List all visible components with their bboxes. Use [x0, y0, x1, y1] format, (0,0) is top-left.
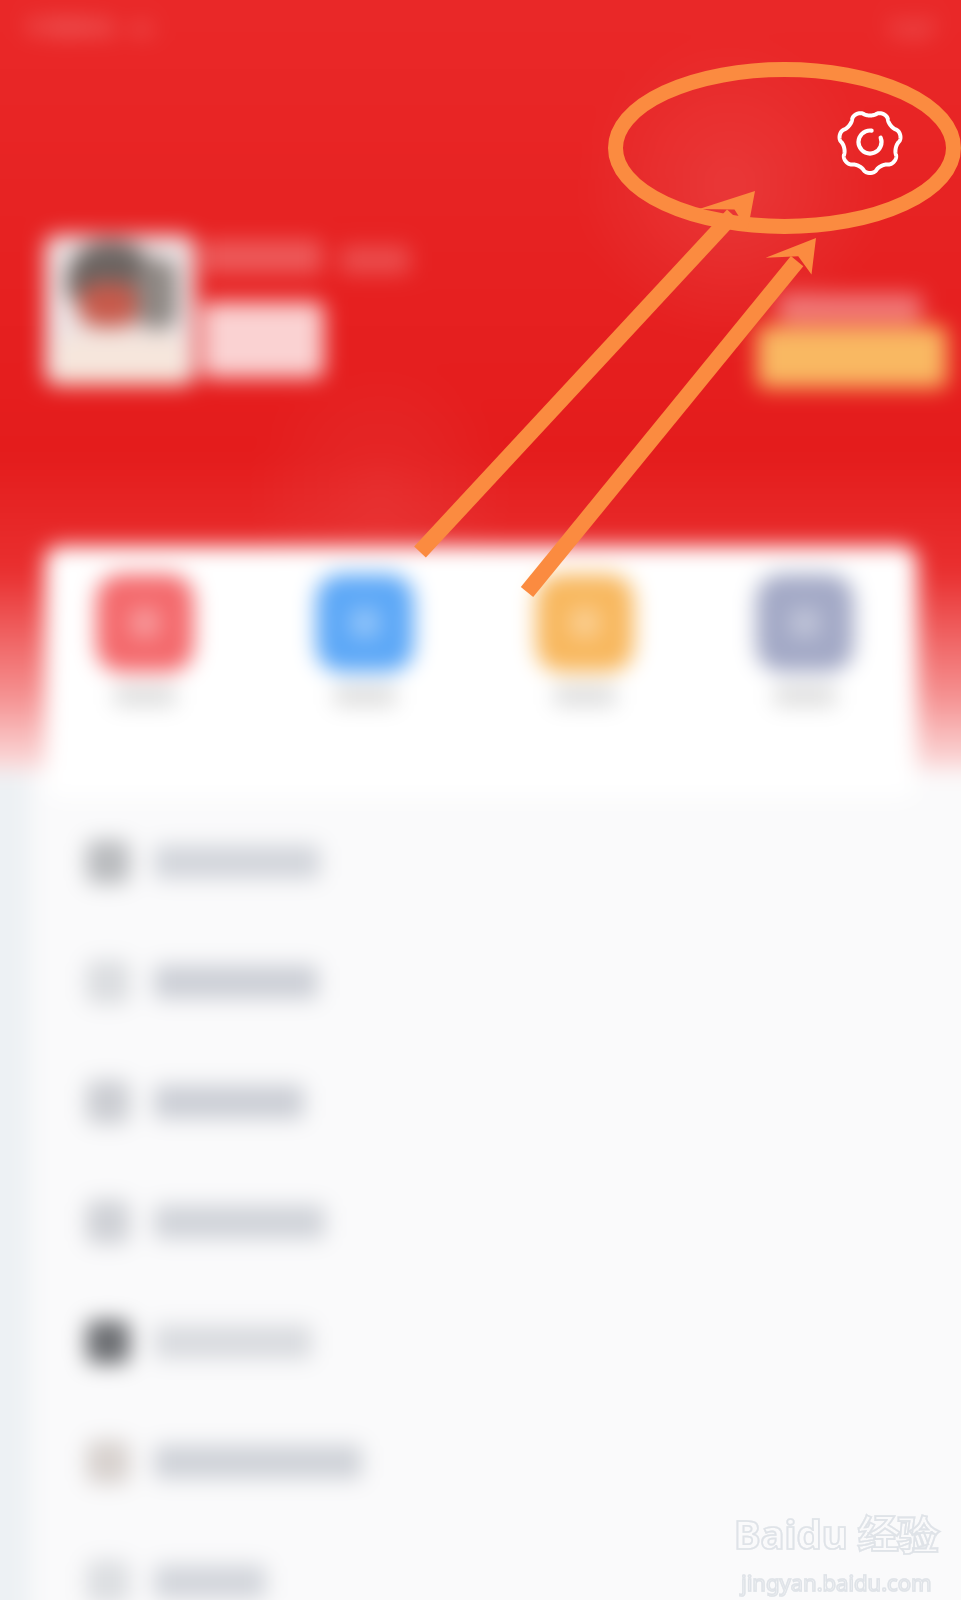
staticText: 中国移动 [26, 14, 114, 42]
button[interactable] [536, 574, 634, 706]
button[interactable] [756, 574, 854, 706]
button[interactable] [0, 922, 961, 1042]
button[interactable] [96, 574, 194, 706]
staticText: jingyan.baidu.com [741, 1567, 932, 1597]
staticText: Baidu 经验 [734, 1506, 939, 1561]
button[interactable] [316, 574, 414, 706]
button[interactable] [0, 1042, 961, 1162]
button[interactable]: Settings [832, 105, 908, 181]
staticText: 7:07 [887, 12, 935, 45]
button[interactable] [0, 1282, 961, 1402]
button[interactable] [0, 1522, 961, 1600]
button[interactable] [757, 326, 947, 388]
button[interactable] [45, 235, 195, 385]
button[interactable] [0, 1162, 961, 1282]
button[interactable] [0, 1402, 961, 1522]
button[interactable] [202, 302, 324, 378]
button[interactable] [0, 802, 961, 922]
